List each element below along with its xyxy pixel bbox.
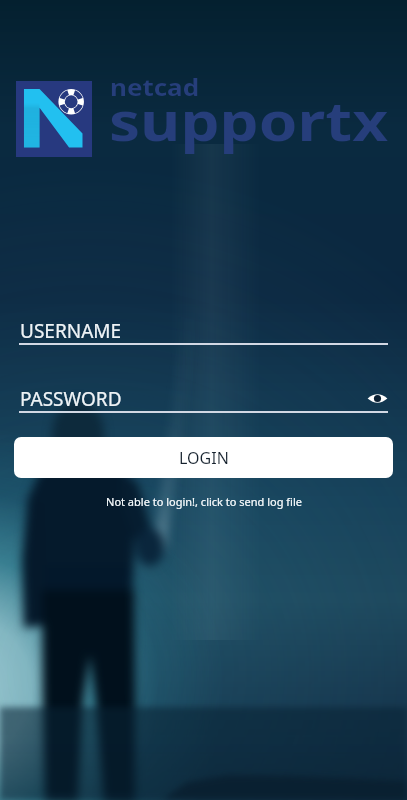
staticText: LOGIN (179, 447, 229, 469)
button[interactable]: Not able to login!, click to send log fi… (0, 494, 407, 509)
staticText: Not able to login!, click to send log fi… (106, 494, 302, 509)
staticText: netcad (110, 70, 200, 102)
button[interactable]: USERNAME (19, 318, 388, 345)
staticText: USERNAME (20, 318, 122, 344)
button[interactable]: LOGIN (14, 437, 393, 478)
staticText: supportx (109, 83, 389, 156)
staticText: PASSWORD (20, 386, 122, 412)
button[interactable]: Show password (366, 387, 388, 409)
button[interactable]: PASSWORD (19, 386, 388, 413)
